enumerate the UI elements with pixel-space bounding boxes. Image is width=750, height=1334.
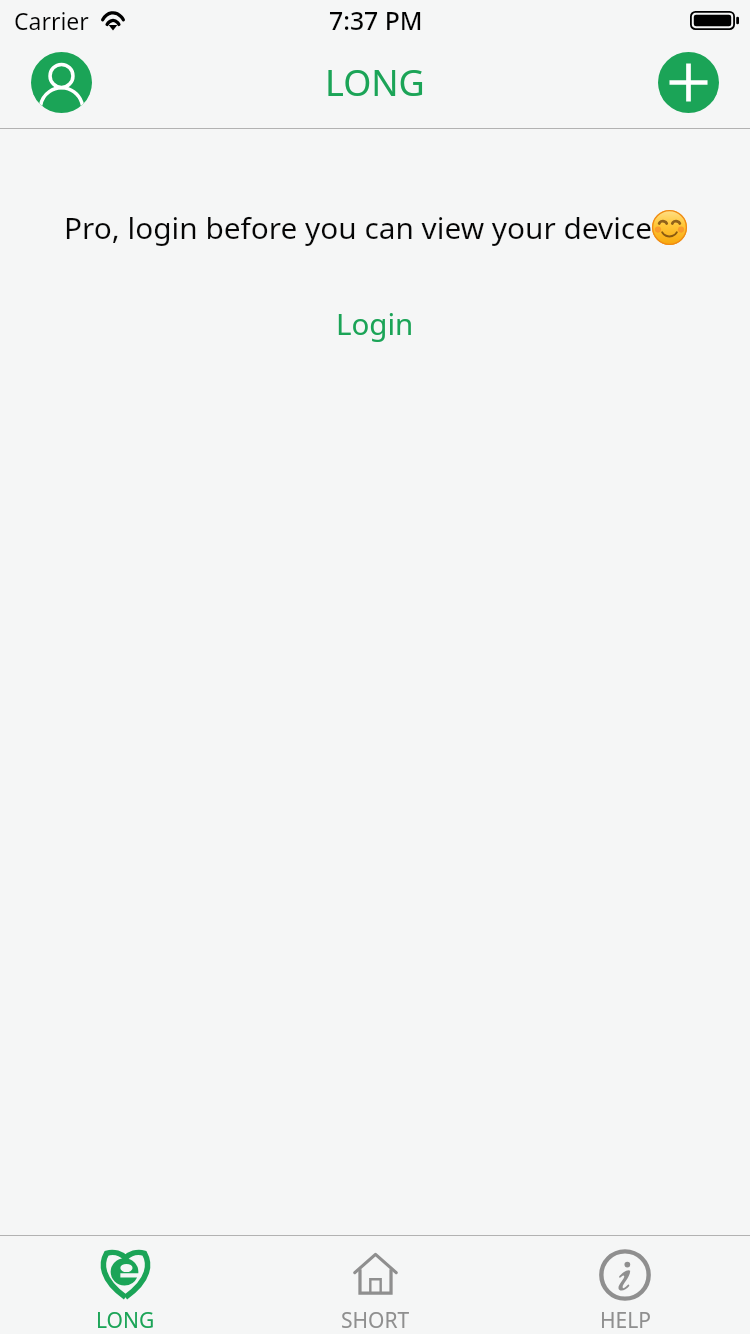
staticText: LONG (325, 58, 425, 107)
staticText: LONG (96, 1306, 155, 1334)
staticText: 7:37 PM (329, 3, 423, 37)
button[interactable]: Login (322, 297, 428, 349)
staticText: Login (336, 303, 414, 343)
staticText: HELP (600, 1306, 651, 1334)
button[interactable]: LONG (0, 1236, 250, 1334)
button[interactable]: HELP (500, 1236, 750, 1334)
staticText: SHORT (341, 1306, 410, 1334)
button[interactable]: Profile (31, 52, 92, 113)
button[interactable]: SHORT (250, 1236, 500, 1334)
staticText: Carrier (14, 5, 89, 36)
button[interactable]: Add (658, 52, 719, 113)
staticText: Pro, login before you can view your devi… (64, 207, 652, 248)
